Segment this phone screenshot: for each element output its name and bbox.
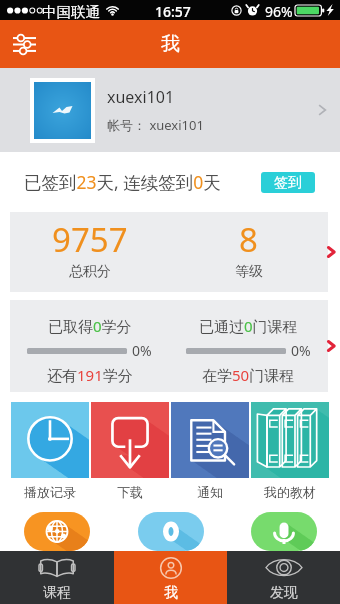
staticText: 通知 [197,484,223,500]
staticText: 我 [161,32,180,56]
staticText: 16:57 [155,2,191,21]
button[interactable]: 已取得0学分 [10,300,328,392]
button[interactable]: 下载 [91,402,169,500]
staticText: 已通过0门课程 [199,316,298,336]
staticText: 我 [164,584,178,602]
staticText: 帐号： xuexi101 [107,116,204,134]
button[interactable]: 课程 [0,551,114,604]
staticText: 课程 [43,584,71,602]
staticText: 我的教材 [264,484,316,500]
button[interactable]: Settings [4,24,44,64]
staticText: 0% [291,341,311,360]
button[interactable]: Voice [251,512,317,551]
staticText: 在学50门课程 [202,365,295,385]
staticText: 签到 [274,174,302,192]
staticText: 0% [132,341,152,360]
staticText: 还有191学分 [47,365,133,385]
staticText: 9757 [52,217,128,262]
staticText: 播放记录 [24,484,76,500]
button[interactable]: 播放记录 [11,402,89,500]
staticText: 等级 [235,263,263,281]
button[interactable]: xuexi101 [0,68,340,152]
button[interactable]: 通知 [171,402,249,500]
staticText: 8 [239,217,258,262]
button[interactable]: 我 [114,551,227,604]
button[interactable]: Web [24,512,90,551]
staticText: 已取得0学分 [48,316,132,336]
button[interactable]: 我的教材 [251,402,329,500]
staticText: 中国联通 [42,3,100,21]
staticText: 总积分 [69,263,111,281]
staticText: 96% [265,2,293,21]
button[interactable]: 发现 [227,551,340,604]
button[interactable]: 签到 [261,172,315,193]
button[interactable]: 9757 [10,212,328,292]
staticText: 下载 [117,484,143,500]
staticText: 发现 [270,584,298,602]
button[interactable]: Profile [138,512,204,551]
staticText: xuexi101 [107,86,175,108]
staticText: 已签到23天, 连续签到0天 [24,170,221,194]
